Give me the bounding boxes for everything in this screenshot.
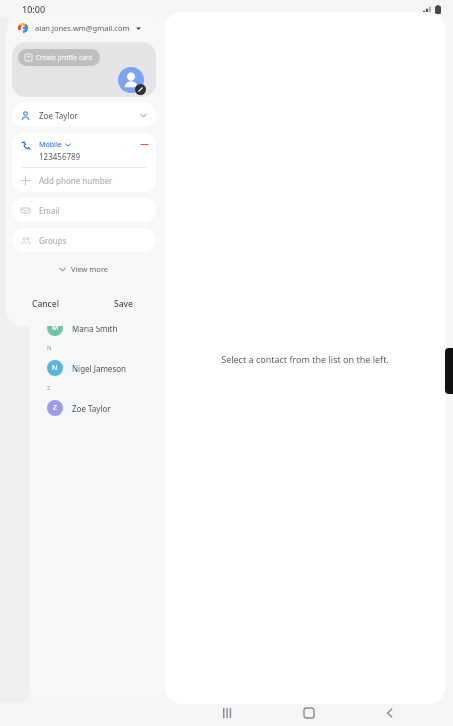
other: Edge panel handle bbox=[445, 348, 453, 394]
staticText: Select a contact from the list on the le… bbox=[221, 353, 389, 365]
staticText: 123456789 bbox=[39, 151, 81, 162]
staticText: Add phone number bbox=[39, 175, 113, 186]
staticText: Zoe Taylor bbox=[72, 403, 111, 414]
button[interactable]: Zoe Taylor bbox=[12, 103, 156, 127]
button[interactable]: Save bbox=[84, 286, 162, 322]
staticText: alan.jones.wm@gmail.com bbox=[35, 23, 130, 33]
button[interactable]: Groups bbox=[12, 228, 156, 252]
staticText: View more bbox=[71, 264, 109, 274]
staticText: Nigel Jameson bbox=[72, 363, 126, 374]
button[interactable]: Back bbox=[372, 700, 408, 726]
button[interactable]: Recents bbox=[210, 700, 246, 726]
staticText: Mobile bbox=[39, 140, 62, 150]
button[interactable]: Add phone number bbox=[12, 168, 156, 192]
staticText: Create profile card bbox=[36, 53, 93, 62]
staticText: Email bbox=[39, 205, 60, 216]
button[interactable]: N bbox=[30, 356, 165, 380]
button[interactable]: Create profile card bbox=[18, 49, 100, 66]
button[interactable]: alan.jones.wm@gmail.com bbox=[6, 14, 162, 42]
staticText: N bbox=[52, 363, 58, 373]
staticText: Groups bbox=[39, 235, 67, 246]
button[interactable]: View more bbox=[6, 261, 162, 277]
button[interactable]: Edit photo bbox=[118, 67, 146, 95]
staticText: Cancel bbox=[32, 298, 59, 310]
staticText: 10:00 bbox=[22, 3, 46, 15]
button[interactable]: Mobile bbox=[12, 133, 156, 167]
button[interactable]: M bbox=[30, 316, 165, 340]
button[interactable]: Remove phone number bbox=[138, 138, 150, 150]
button[interactable]: Home bbox=[291, 700, 327, 726]
staticText: Maria Smith bbox=[72, 323, 118, 334]
staticText: Save bbox=[114, 298, 133, 310]
staticText: Z bbox=[53, 403, 58, 413]
staticText: N bbox=[47, 344, 52, 352]
staticText: Z bbox=[47, 384, 51, 392]
staticText: M bbox=[52, 323, 59, 333]
button[interactable]: Email bbox=[12, 198, 156, 222]
button[interactable]: Z bbox=[30, 396, 165, 420]
button[interactable]: Cancel bbox=[6, 286, 84, 322]
staticText: Zoe Taylor bbox=[39, 110, 78, 121]
